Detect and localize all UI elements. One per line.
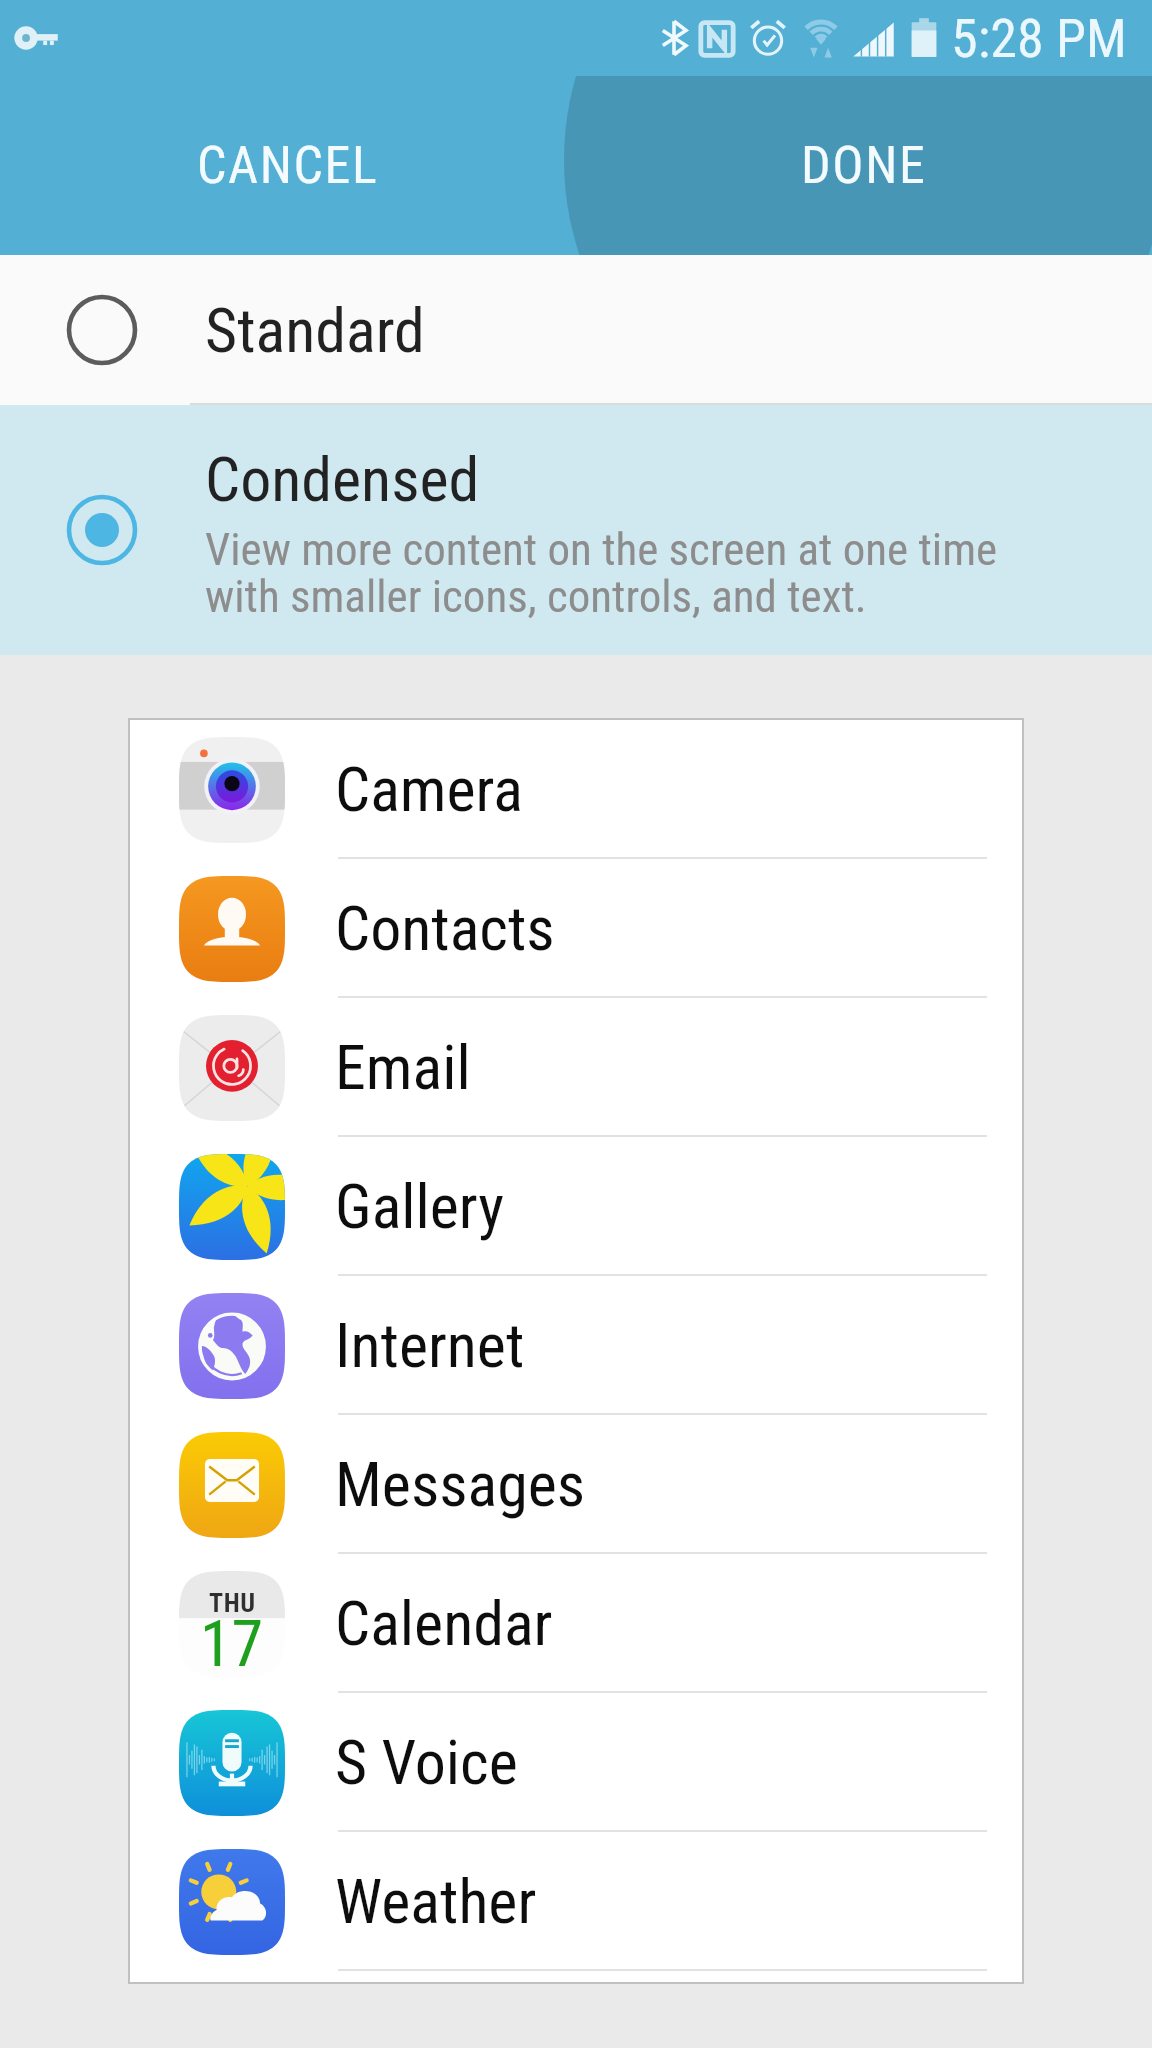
button[interactable]: Internet [130,1276,1022,1415]
other: Standard, not selected [62,290,142,370]
button[interactable]: Email [130,998,1022,1137]
staticText: View more content on the screen at one t… [205,523,1010,623]
button[interactable]: DONE [576,76,1152,255]
staticText: Weather [335,1865,537,1938]
staticText: 17 [200,1607,264,1682]
staticText: Email [335,1031,471,1104]
button[interactable]: Messages [130,1415,1022,1554]
staticText: THU [209,1588,256,1618]
staticText: Contacts [335,892,555,965]
staticText: S Voice [335,1726,518,1799]
other: VPN active [12,12,64,64]
staticText: 5:28 PM [951,7,1127,70]
staticText: CANCEL [197,135,379,196]
button[interactable]: Standard, not selected [0,255,1152,405]
staticText: Internet [335,1309,525,1382]
other: Condensed, selected [62,490,142,570]
button[interactable]: Weather [130,1832,1022,1971]
button[interactable]: CANCEL [0,76,576,255]
button[interactable]: Condensed, selected [0,405,1152,655]
button[interactable]: Gallery [130,1137,1022,1276]
staticText: Standard [205,294,425,367]
button[interactable]: S Voice [130,1693,1022,1832]
staticText: Calendar [335,1587,553,1660]
button[interactable]: Camera [130,720,1022,859]
button[interactable]: Contacts [130,859,1022,998]
staticText: Camera [335,753,523,826]
staticText: Messages [335,1448,586,1521]
staticText: Gallery [335,1170,505,1243]
button[interactable]: THU [130,1554,1022,1693]
staticText: Condensed [205,443,480,516]
staticText: DONE [801,135,927,196]
